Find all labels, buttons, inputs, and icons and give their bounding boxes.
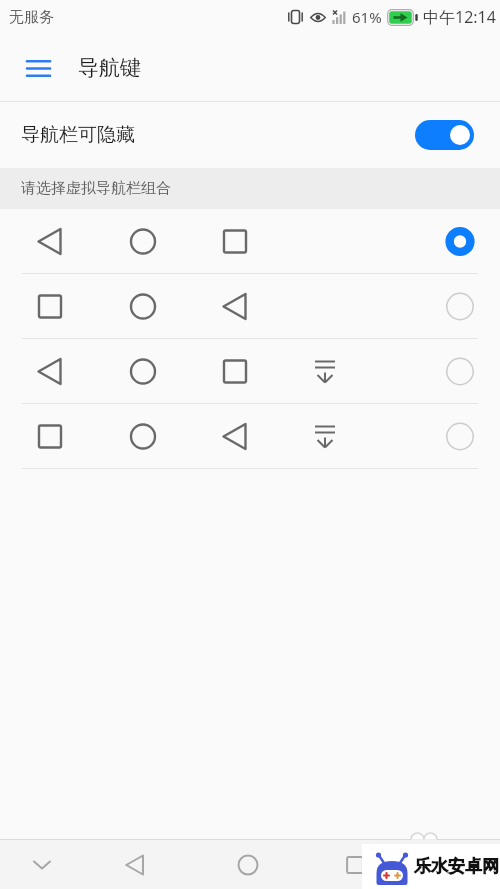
button[interactable] (17, 839, 67, 889)
button[interactable] (0, 274, 500, 339)
staticText: 导航键 (78, 55, 141, 81)
staticText: 请选择虚拟导航栏组合 (21, 179, 171, 198)
button[interactable] (0, 339, 500, 404)
button[interactable] (110, 839, 160, 889)
staticText: 乐水安卓网 (414, 856, 499, 877)
button[interactable] (0, 40, 68, 96)
staticText: 导航栏可隐藏 (21, 123, 135, 147)
button[interactable] (415, 120, 474, 150)
button[interactable] (330, 839, 380, 889)
button[interactable]: 乐水安卓网 (362, 844, 500, 889)
staticText: 中午12:14 (423, 6, 496, 28)
button[interactable]: 导航栏可隐藏 (0, 102, 500, 168)
button[interactable] (0, 209, 500, 274)
staticText: 61% (352, 7, 382, 27)
button[interactable] (0, 404, 500, 469)
button[interactable] (223, 839, 273, 889)
staticText: 无服务 (9, 8, 54, 27)
